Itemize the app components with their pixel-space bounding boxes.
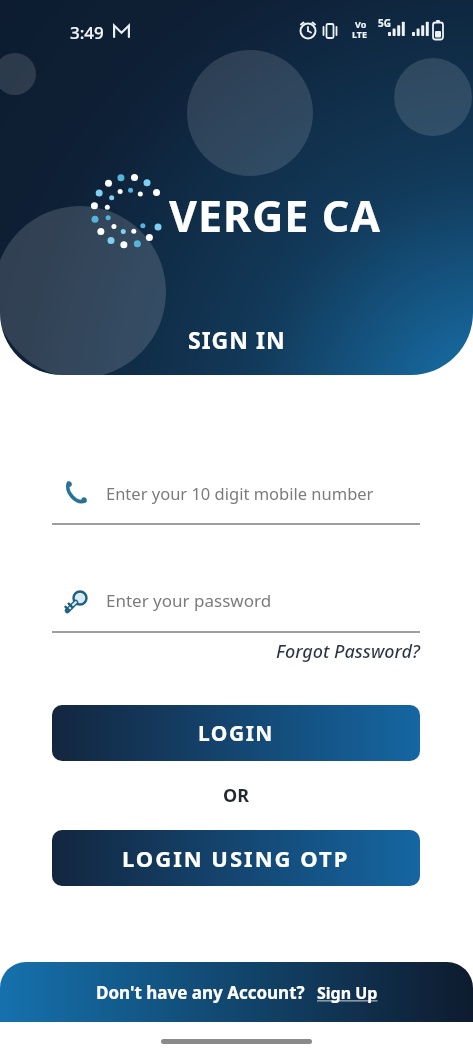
staticText: Don't have any Account?	[96, 981, 305, 1004]
staticText: Enter your password	[106, 589, 272, 612]
staticText: Vo	[355, 18, 367, 30]
button[interactable]: Don't have any Account?	[0, 962, 473, 1022]
staticText: LOGIN USING OTP	[122, 843, 350, 873]
staticText: OR	[223, 783, 250, 808]
staticText: 5G	[378, 16, 391, 30]
staticText: 3:49	[70, 21, 104, 44]
button[interactable]: Forgot Password?	[276, 639, 420, 664]
staticText: LTE	[352, 28, 368, 40]
staticText: VERGE CA	[169, 186, 381, 245]
staticText: Enter your 10 digit mobile number	[106, 482, 374, 504]
button[interactable]: LOGIN USING OTP	[52, 830, 420, 886]
staticText: Sign Up	[317, 982, 378, 1004]
staticText: SIGN IN	[188, 324, 286, 355]
button[interactable]: LOGIN	[52, 705, 420, 761]
staticText: LOGIN	[198, 719, 274, 748]
